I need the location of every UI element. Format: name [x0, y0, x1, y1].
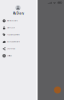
- staticText: Settings: [7, 55, 12, 57]
- button[interactable]: Tag Management: [0, 31, 36, 38]
- button[interactable]: Diary Lock: [0, 24, 36, 31]
- button[interactable]: Share App: [0, 45, 36, 52]
- button[interactable]: Settings: [0, 52, 36, 59]
- staticText: Diary Lock: [7, 27, 15, 29]
- staticText: Tag Management: [7, 34, 19, 36]
- button[interactable]: New entry: [54, 86, 61, 93]
- staticText: My Diary: [12, 12, 23, 15]
- button[interactable]: Backup & Restore: [0, 38, 36, 45]
- button[interactable]: Interface colors: [0, 17, 36, 24]
- staticText: Interface colors: [7, 20, 18, 22]
- staticText: Backup & Restore: [7, 41, 20, 43]
- staticText: Share App: [7, 48, 15, 50]
